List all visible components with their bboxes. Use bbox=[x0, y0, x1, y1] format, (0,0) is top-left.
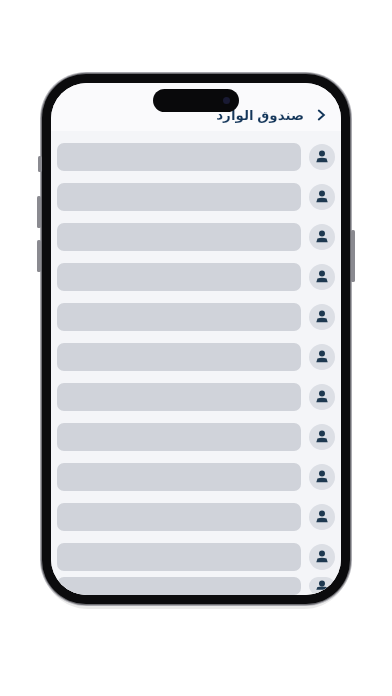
button[interactable]: Contact bbox=[51, 217, 341, 257]
button[interactable]: Contact bbox=[51, 137, 341, 177]
other: Contact bbox=[309, 144, 335, 170]
other: Contact bbox=[309, 304, 335, 330]
button[interactable]: Contact bbox=[51, 417, 341, 457]
staticText: صندوق الوارد bbox=[216, 106, 304, 124]
other: Contact bbox=[309, 577, 335, 595]
button[interactable]: صندوق الوارد bbox=[212, 103, 333, 127]
other: Forward bbox=[313, 107, 329, 123]
button[interactable]: Contact bbox=[51, 497, 341, 537]
other: Contact bbox=[309, 344, 335, 370]
other: Contact bbox=[309, 504, 335, 530]
button[interactable]: Contact bbox=[51, 337, 341, 377]
button[interactable]: Contact bbox=[51, 297, 341, 337]
other: Contact bbox=[309, 184, 335, 210]
button[interactable]: Contact bbox=[51, 537, 341, 577]
other: Contact bbox=[309, 264, 335, 290]
other: Contact bbox=[309, 544, 335, 570]
other: Contact bbox=[309, 464, 335, 490]
other: Contact bbox=[309, 224, 335, 250]
button[interactable]: Contact bbox=[51, 177, 341, 217]
other: Contact bbox=[309, 384, 335, 410]
button[interactable]: Contact bbox=[51, 377, 341, 417]
button[interactable]: Contact bbox=[51, 457, 341, 497]
other: Contact bbox=[309, 424, 335, 450]
button[interactable]: Contact bbox=[51, 257, 341, 297]
button[interactable]: Contact bbox=[51, 577, 341, 595]
